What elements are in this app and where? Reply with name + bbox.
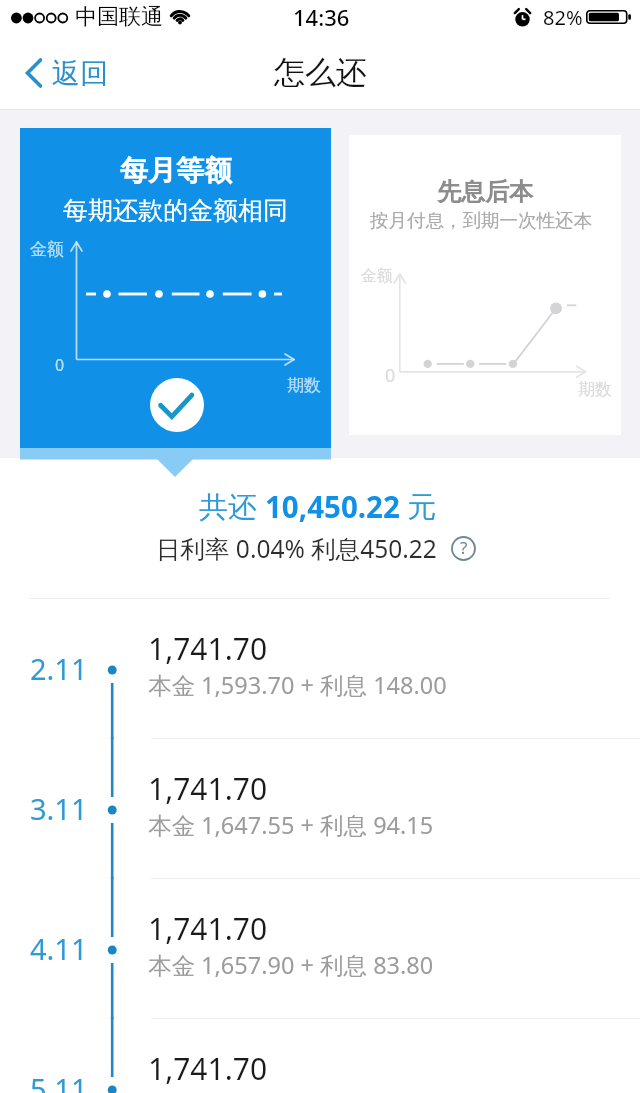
staticText: 共还 xyxy=(199,486,265,526)
staticText: 82% xyxy=(543,4,583,31)
staticText: 每期还款的金额相同 xyxy=(63,195,288,226)
staticText: 怎么还 xyxy=(274,53,367,92)
button[interactable]: 5.11 xyxy=(0,1018,640,1093)
button[interactable]: 先息后本 xyxy=(349,135,621,435)
staticText: 本金 1,657.90 + 利息 83.80 xyxy=(148,949,434,981)
staticText: 中国联通 xyxy=(75,3,163,31)
staticText: 2.11 xyxy=(30,649,88,688)
staticText: 1,741.70 xyxy=(148,768,268,809)
button[interactable]: 2.11 xyxy=(0,598,640,738)
staticText: 0 xyxy=(385,363,396,388)
button[interactable]: 返回 xyxy=(0,45,120,101)
staticText: 金额 xyxy=(361,266,393,286)
staticText: 每月等额 xyxy=(120,153,232,188)
staticText: 本金 1,647.55 + 利息 94.15 xyxy=(148,809,434,841)
staticText: 3.11 xyxy=(30,789,88,828)
staticText: 4.11 xyxy=(30,929,88,968)
staticText: 1,741.70 xyxy=(148,628,268,669)
staticText: 返回 xyxy=(52,56,108,91)
staticText: 14:36 xyxy=(293,2,350,32)
staticText: 1,741.70 xyxy=(148,908,268,949)
staticText: 1,741.70 xyxy=(148,1048,268,1089)
staticText: 5.11 xyxy=(30,1069,88,1093)
staticText: 按月付息，到期一次性还本 xyxy=(370,209,592,232)
button[interactable]: 3.11 xyxy=(0,738,640,878)
staticText: 期数 xyxy=(287,375,321,396)
staticText: 期数 xyxy=(578,379,612,400)
staticText: 元 xyxy=(400,486,437,526)
staticText: ? xyxy=(460,536,468,559)
button[interactable]: 帮助 xyxy=(451,536,476,561)
button[interactable]: 4.11 xyxy=(0,878,640,1018)
staticText: 本金 1,593.70 + 利息 148.00 xyxy=(148,669,447,701)
staticText: 0 xyxy=(55,354,65,376)
staticText: 日利率 0.04% 利息450.22 xyxy=(156,532,437,565)
staticText: 先息后本 xyxy=(437,177,533,207)
staticText: 金额 xyxy=(30,239,64,260)
staticText: 10,450.22 xyxy=(265,486,400,526)
button[interactable]: 每月等额 xyxy=(20,128,331,448)
